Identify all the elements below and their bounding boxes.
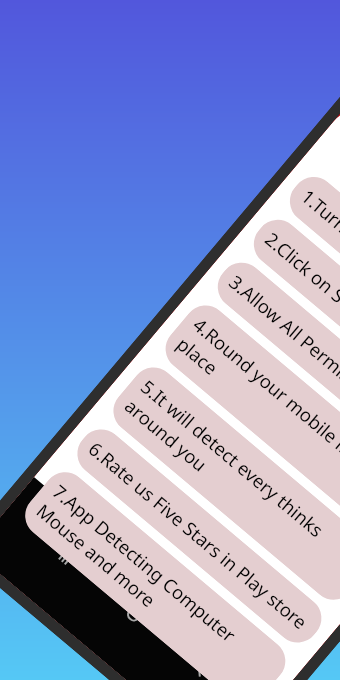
button[interactable]: Home — [117, 598, 151, 632]
button[interactable]: 6.Rate us Five Stars in Play store — [68, 420, 330, 651]
button[interactable]: 4.Round your mobile in the place — [157, 296, 340, 547]
staticText: 6.Rate us Five Stars in Play store — [84, 436, 313, 635]
button[interactable]: 2.Click on Start — [245, 211, 340, 442]
staticText: 1.Turn on the App — [296, 183, 340, 302]
staticText: 5.It will detect every thinks around you — [120, 374, 340, 593]
button[interactable]: 5.It will detect every thinks around you — [104, 358, 340, 609]
button[interactable]: 3.Allow All Permissions — [209, 254, 340, 485]
staticText: 2.Click on Start — [260, 226, 340, 328]
staticText: 7.App Detecting Computer Mouse and more — [32, 479, 279, 680]
button[interactable]: Back — [184, 654, 218, 680]
button[interactable]: 1.Turn on the App — [281, 168, 340, 399]
staticText: 3.Allow All Permissions — [224, 269, 340, 416]
button[interactable]: Recent apps — [49, 540, 83, 574]
staticText: 4.Round your mobile in the place — [172, 312, 340, 531]
button[interactable]: 7.App Detecting Computer Mouse and more — [16, 463, 294, 680]
